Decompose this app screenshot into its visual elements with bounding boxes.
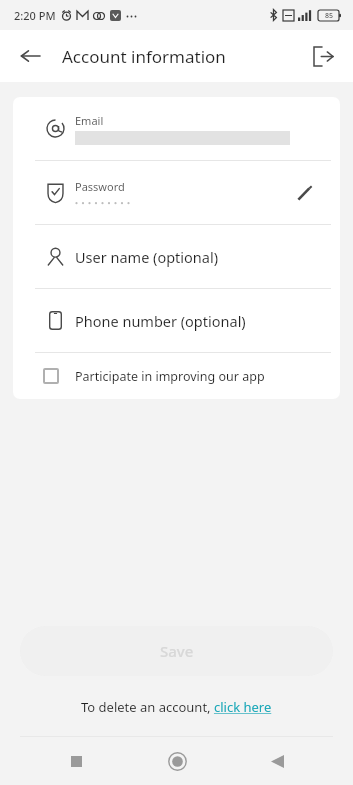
- staticText: User name (optional): [75, 247, 219, 267]
- staticText: 2:20 PM: [14, 8, 56, 23]
- staticText: Password: [75, 179, 125, 194]
- button[interactable]: Back: [253, 737, 301, 785]
- button[interactable]: Log out: [301, 34, 345, 78]
- staticText: Save: [160, 641, 194, 661]
- staticText: Email: [75, 113, 104, 128]
- staticText: Account information: [62, 45, 226, 68]
- staticText: Participate in improving our app: [75, 368, 265, 385]
- button[interactable]: Participate in improving our app: [13, 353, 340, 399]
- button[interactable]: Edit password: [286, 175, 322, 211]
- button[interactable]: Email: [13, 97, 340, 160]
- button[interactable]: Back: [8, 34, 52, 78]
- button[interactable]: User name (optional): [13, 225, 340, 288]
- button[interactable]: Recents: [52, 737, 100, 785]
- staticText: Phone number (optional): [75, 311, 246, 331]
- button[interactable]: Password: [13, 161, 340, 224]
- staticText: To delete an account, click here: [81, 698, 272, 716]
- button[interactable]: Home: [153, 737, 201, 785]
- button[interactable]: To delete an account, click here: [81, 698, 272, 716]
- button[interactable]: Phone number (optional): [13, 289, 340, 352]
- staticText: 85: [325, 11, 334, 21]
